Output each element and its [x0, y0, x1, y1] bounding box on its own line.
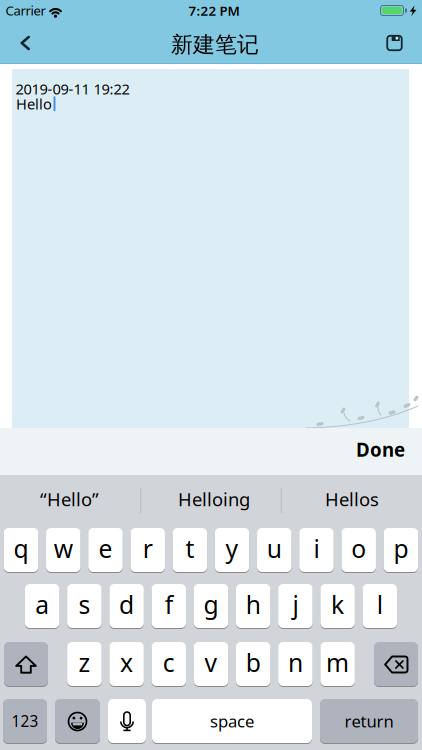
staticText: b — [246, 646, 261, 679]
button[interactable]: f — [152, 583, 186, 628]
staticText: f — [165, 588, 173, 621]
staticText: x — [120, 646, 133, 679]
staticText: g — [203, 588, 218, 621]
button[interactable]: e — [88, 527, 123, 572]
staticText: v — [204, 646, 217, 679]
staticText: n — [288, 646, 303, 679]
button[interactable]: w — [46, 527, 81, 572]
button[interactable]: r — [130, 527, 165, 572]
staticText: y — [226, 532, 239, 565]
button[interactable] — [374, 641, 418, 686]
staticText: Hellos — [325, 487, 379, 511]
button[interactable]: d — [109, 583, 144, 628]
button[interactable]: g — [194, 583, 228, 628]
button[interactable]: l — [363, 583, 397, 628]
staticText: p — [393, 532, 408, 565]
staticText: “Hello” — [40, 487, 99, 511]
staticText: Helloing — [178, 487, 250, 511]
button[interactable] — [379, 28, 409, 58]
staticText: i — [313, 532, 319, 565]
button[interactable]: p — [384, 527, 418, 572]
button[interactable]: k — [320, 583, 355, 628]
button[interactable]: h — [236, 583, 270, 628]
staticText: return — [344, 710, 393, 732]
button[interactable] — [108, 698, 146, 743]
staticText: c — [163, 646, 175, 679]
staticText: j — [292, 588, 298, 621]
staticText: e — [98, 532, 112, 565]
staticText: d — [119, 588, 134, 621]
button[interactable]: v — [194, 641, 228, 686]
button[interactable]: Done — [356, 426, 405, 473]
staticText: m — [326, 646, 349, 679]
button[interactable]: o — [341, 527, 376, 572]
staticText: u — [267, 532, 282, 565]
button[interactable]: “Hello” — [4, 475, 134, 523]
staticText: 2019-09-11 19:22 — [15, 79, 129, 98]
button[interactable]: z — [67, 641, 102, 686]
staticText: k — [331, 588, 344, 621]
button[interactable] — [4, 641, 48, 686]
button[interactable] — [55, 698, 100, 743]
button[interactable]: j — [278, 583, 313, 628]
staticText: s — [78, 588, 90, 621]
staticText: 新建笔记 — [171, 31, 259, 58]
staticText: l — [377, 588, 383, 621]
button[interactable]: 123 — [3, 698, 47, 743]
button[interactable]: Helloing — [149, 475, 279, 523]
button[interactable] — [5, 23, 45, 63]
button[interactable]: b — [236, 641, 270, 686]
staticText: r — [143, 532, 153, 565]
button[interactable]: a — [25, 583, 59, 628]
button[interactable]: i — [299, 527, 334, 572]
button[interactable]: s — [67, 583, 102, 628]
staticText: h — [246, 588, 261, 621]
button[interactable]: u — [257, 527, 292, 572]
button[interactable]: Hellos — [287, 475, 417, 523]
staticText: q — [14, 532, 29, 565]
staticText: t — [185, 532, 194, 565]
button[interactable]: c — [152, 641, 186, 686]
staticText: Done — [356, 437, 405, 462]
staticText: w — [54, 532, 73, 565]
staticText: z — [78, 646, 90, 679]
button[interactable]: t — [173, 527, 207, 572]
button[interactable]: x — [109, 641, 144, 686]
staticText: o — [351, 532, 366, 565]
staticText: a — [35, 588, 49, 621]
staticText: space — [210, 710, 254, 732]
button[interactable]: m — [320, 641, 355, 686]
button[interactable]: space — [152, 698, 312, 743]
button[interactable]: return — [320, 698, 418, 743]
staticText: Carrier — [5, 2, 45, 19]
staticText: Hello — [16, 94, 52, 113]
button[interactable]: q — [4, 527, 38, 572]
button[interactable]: n — [278, 641, 313, 686]
staticText: 7:22 PM — [188, 2, 239, 19]
button[interactable]: y — [215, 527, 249, 572]
staticText: 123 — [11, 711, 38, 731]
